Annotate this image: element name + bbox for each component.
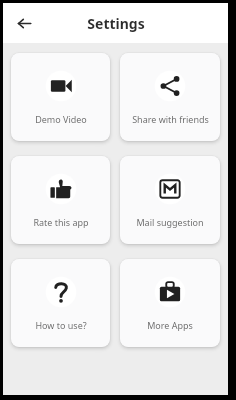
staticText: Mail suggestion bbox=[136, 216, 204, 228]
staticText: Settings bbox=[87, 14, 145, 33]
button[interactable]: Demo Video bbox=[11, 53, 110, 141]
button[interactable]: Share with friends bbox=[120, 53, 220, 141]
staticText: Rate this app bbox=[33, 216, 89, 228]
button[interactable]: Back bbox=[9, 8, 39, 38]
staticText: Demo Video bbox=[35, 113, 87, 125]
staticText: Share with friends bbox=[132, 113, 209, 125]
button[interactable]: How to use? bbox=[11, 259, 110, 347]
button[interactable]: Rate this app bbox=[11, 156, 110, 244]
button[interactable]: Mail suggestion bbox=[120, 156, 220, 244]
button[interactable]: More Apps bbox=[120, 259, 220, 347]
staticText: How to use? bbox=[35, 319, 87, 331]
staticText: More Apps bbox=[147, 319, 193, 331]
